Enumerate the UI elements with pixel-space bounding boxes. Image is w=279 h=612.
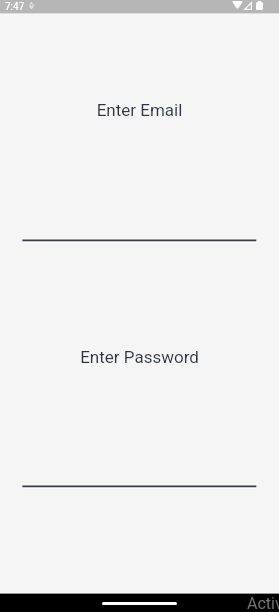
button[interactable]: Enter Email <box>0 96 279 246</box>
button[interactable]: Enter Password <box>0 343 279 492</box>
staticText: Enter Password <box>0 347 279 367</box>
staticText: 7:47 <box>5 1 25 13</box>
button[interactable]: Home <box>102 602 177 605</box>
staticText: Activity <box>247 594 279 612</box>
staticText: Enter Email <box>0 100 279 120</box>
